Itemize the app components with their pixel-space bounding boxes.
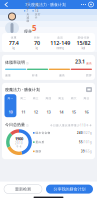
- staticText: 定制专属膳食 ›: [64, 38, 90, 43]
- staticText: 15/82: [76, 39, 90, 46]
- button[interactable]: More: [80, 0, 87, 9]
- staticText: 瘦身能力: [24, 29, 32, 44]
- staticText: ⓘ: [25, 124, 29, 127]
- staticText: 周五: [58, 97, 64, 100]
- staticText: 14: [59, 109, 63, 115]
- staticText: 脂肪: [35, 150, 42, 153]
- staticText: 16: [85, 109, 89, 115]
- staticText: 周三: [33, 97, 39, 100]
- staticText: 瘦魔法力 · 膳食计划: [5, 87, 40, 92]
- staticText: 周四: [45, 97, 51, 100]
- button[interactable]: 周五: [55, 94, 67, 117]
- staticText: 2010: [15, 141, 23, 145]
- button[interactable]: 周二: [17, 94, 29, 117]
- staticText: 偏高: [85, 62, 92, 65]
- staticText: 分: [37, 39, 42, 44]
- staticText: 血压: [57, 36, 63, 39]
- button[interactable]: 周三: [30, 94, 42, 117]
- button[interactable]: 周四: [43, 94, 54, 117]
- staticText: 11: [21, 109, 25, 115]
- button[interactable]: 重新检测: [4, 185, 42, 194]
- staticText: mmHg: [56, 46, 64, 50]
- button[interactable]: Back: [2, 0, 11, 9]
- staticText: 12: [34, 109, 38, 115]
- button[interactable]: 定制专属膳食 ›: [61, 37, 93, 44]
- staticText: 周二: [20, 97, 26, 100]
- staticText: 1900: [15, 136, 23, 141]
- staticText: 周一: [7, 97, 13, 100]
- staticText: 已坚持7天减脂: [26, 0, 29, 22]
- staticText: 10: [8, 109, 12, 115]
- staticText: 7天瘦魔法力 · 膳食计划: [25, 2, 66, 7]
- button[interactable]: Calendar: [86, 87, 92, 92]
- staticText: /65g: [85, 150, 92, 153]
- button[interactable]: 周日: [81, 94, 92, 117]
- staticText: 55: [79, 140, 83, 144]
- staticText: 240: [77, 131, 83, 135]
- staticText: /101g: [83, 140, 92, 144]
- button[interactable]: 周一: [4, 94, 16, 117]
- staticText: 体脂率说明: [5, 60, 25, 65]
- staticText: 53: [32, 22, 37, 44]
- staticText: 千卡: [16, 145, 22, 148]
- staticText: 偏瘦: [5, 74, 11, 77]
- staticText: kcal: [81, 46, 85, 50]
- staticText: 分享我的膳食计划: [53, 187, 85, 191]
- staticText: 偏高: [59, 74, 65, 77]
- button[interactable]: Help: [87, 0, 95, 9]
- staticText: 周六: [71, 97, 77, 100]
- staticText: 70: [34, 39, 40, 46]
- staticText: kg: [35, 46, 38, 50]
- staticText: 39: [81, 150, 85, 153]
- staticText: 13: [46, 109, 50, 115]
- staticText: 肥胖: [86, 74, 92, 77]
- staticText: 体重: [11, 36, 17, 39]
- button[interactable]: 周六: [68, 94, 80, 117]
- staticText: /327g: [83, 131, 92, 135]
- staticText: 碳水化合物: [35, 131, 51, 135]
- staticText: 标准: [32, 74, 38, 77]
- staticText: kg: [12, 46, 15, 50]
- staticText: 77.4: [9, 39, 19, 46]
- staticText: 112-149: [50, 39, 70, 46]
- staticText: 蛋白质: [35, 140, 45, 144]
- staticText: 基础代谢: [77, 36, 89, 39]
- button[interactable]: 分享我的膳食计划: [46, 185, 93, 194]
- staticText: ⓘ: [25, 62, 29, 65]
- staticText: 今日总热量: [5, 122, 25, 127]
- staticText: 今日摄入量比推荐量少110千卡: [50, 124, 92, 127]
- staticText: 周日: [84, 97, 90, 100]
- staticText: 重新检测: [15, 187, 31, 191]
- staticText: 已完成14次打卡: [35, 3, 41, 19]
- staticText: 23.1: [75, 58, 85, 65]
- staticText: 15: [72, 109, 76, 115]
- staticText: 目标: [34, 36, 40, 39]
